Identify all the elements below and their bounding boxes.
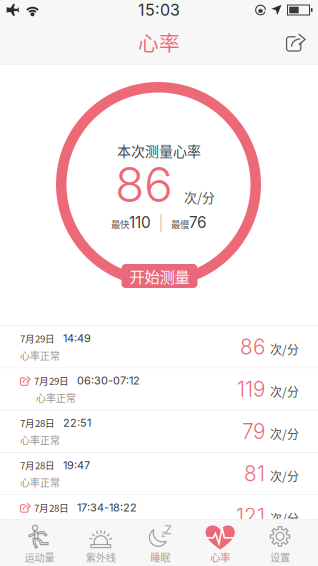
button[interactable]: 运动量 xyxy=(10,519,70,566)
staticText: 86 xyxy=(115,155,173,214)
staticText: | xyxy=(158,214,163,232)
staticText: 次/分 xyxy=(270,510,299,527)
staticText: 设置 xyxy=(270,550,290,564)
staticText: 心率正常 xyxy=(36,390,76,405)
staticText: 最快 xyxy=(111,217,129,231)
button[interactable]: 7月28日 xyxy=(0,537,318,566)
button[interactable]: 心率 xyxy=(190,519,250,566)
staticText: 次/分 xyxy=(270,552,299,566)
staticText: 心率正常 xyxy=(20,348,60,362)
staticText: 121 xyxy=(236,504,265,529)
staticText: 心率正常 xyxy=(20,560,60,566)
staticText: Z xyxy=(164,523,172,537)
staticText: 次/分 xyxy=(184,188,215,206)
button[interactable]: 7月28日 xyxy=(0,453,318,495)
staticText: 17:34-18:22 xyxy=(77,501,137,514)
staticText: 最慢 xyxy=(171,217,189,231)
staticText: 119 xyxy=(237,377,265,402)
staticText: z xyxy=(161,528,166,539)
button[interactable]: 设置 xyxy=(250,519,310,566)
button[interactable]: 7月29日 xyxy=(0,326,318,368)
staticText: 心率正常 xyxy=(36,517,76,532)
staticText: 开始测量 xyxy=(129,265,189,287)
staticText: 86 xyxy=(240,334,265,359)
staticText: 7月29日 xyxy=(20,331,55,345)
staticText: 81 xyxy=(244,461,265,486)
staticText: 心率 xyxy=(210,550,230,564)
staticText: 15:03 xyxy=(138,0,180,20)
staticText: 12:05 xyxy=(63,543,91,556)
staticText: 次/分 xyxy=(270,467,299,485)
staticText: 心率正常 xyxy=(20,475,60,489)
staticText: 次/分 xyxy=(270,383,299,400)
staticText: 心率正常 xyxy=(20,433,60,447)
staticText: 110 xyxy=(129,213,151,232)
staticText: 14:49 xyxy=(63,332,91,345)
staticText: 紫外线 xyxy=(86,550,116,564)
staticText: 76 xyxy=(189,213,207,232)
button[interactable]: 7月28日 xyxy=(0,411,318,453)
staticText: 次/分 xyxy=(270,340,299,358)
staticText: 7月28日 xyxy=(20,416,55,430)
staticText: 运动量 xyxy=(25,550,55,564)
staticText: 7月29日 xyxy=(34,374,69,387)
staticText: 心率 xyxy=(138,27,180,57)
staticText: 7月28日 xyxy=(20,543,55,557)
staticText: 本次测量心率 xyxy=(117,140,201,161)
button[interactable]: z xyxy=(130,519,190,566)
button[interactable]: Share xyxy=(274,20,318,64)
button[interactable]: 7月29日 xyxy=(0,368,318,411)
staticText: 7月28日 xyxy=(34,500,69,514)
staticText: 睡眠 xyxy=(150,550,170,564)
button[interactable]: 7月28日 xyxy=(0,495,318,537)
staticText: 19:47 xyxy=(63,458,90,472)
staticText: 79 xyxy=(242,419,265,444)
button[interactable]: 开始测量 xyxy=(121,264,197,288)
button[interactable]: 紫外线 xyxy=(71,519,131,566)
staticText: 次/分 xyxy=(270,425,299,442)
staticText: 22:51 xyxy=(63,416,91,429)
staticText: 7月28日 xyxy=(20,458,55,472)
staticText: 06:30-07:12 xyxy=(77,374,140,387)
